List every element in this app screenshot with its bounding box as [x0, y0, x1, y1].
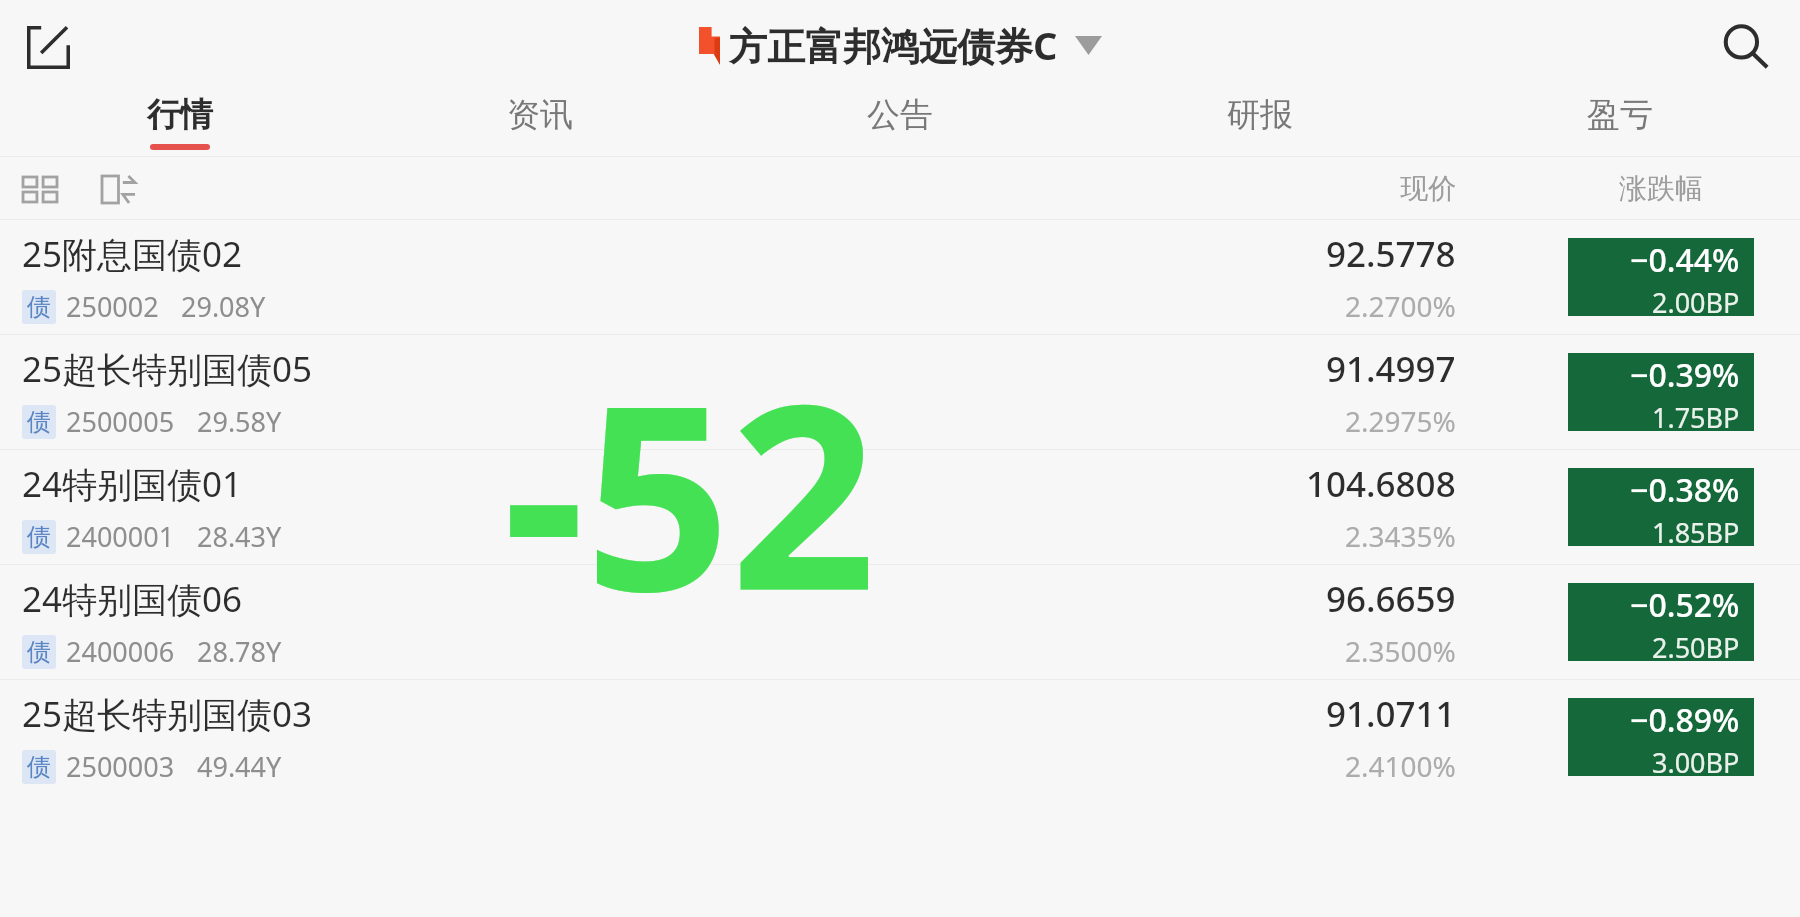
- staticText: −0.44%: [1630, 238, 1740, 282]
- staticText: 250002: [66, 288, 159, 325]
- button[interactable]: Edit: [18, 17, 78, 77]
- button[interactable]: 资讯: [360, 93, 720, 157]
- button[interactable]: 25附息国债02: [0, 220, 1800, 334]
- staticText: 1.75BP: [1652, 399, 1740, 431]
- staticText: 2.50BP: [1652, 629, 1740, 661]
- staticText: 研报: [1227, 94, 1293, 136]
- staticText: 29.58Y: [197, 403, 282, 440]
- staticText: 28.43Y: [197, 518, 282, 555]
- staticText: 债: [27, 407, 51, 437]
- staticText: 债: [27, 637, 51, 667]
- staticText: 91.0711: [1326, 690, 1456, 738]
- staticText: 2500005: [66, 403, 175, 440]
- staticText: −0.39%: [1630, 353, 1740, 397]
- staticText: 1.85BP: [1652, 514, 1740, 546]
- staticText: 方正富邦鸿远债券C: [729, 19, 1058, 71]
- staticText: 28.78Y: [197, 633, 282, 670]
- button[interactable]: Search: [1714, 15, 1778, 79]
- staticText: 25超长特别国债05: [22, 345, 313, 393]
- staticText: 2.4100%: [1345, 747, 1456, 785]
- button[interactable]: 24特别国债01: [0, 450, 1800, 564]
- button[interactable]: Grid layout: [14, 163, 66, 215]
- staticText: 2.2975%: [1345, 402, 1456, 440]
- staticText: 公告: [867, 94, 933, 136]
- button[interactable]: 24特别国债06: [0, 565, 1800, 679]
- staticText: 2.2700%: [1345, 287, 1456, 325]
- staticText: −0.89%: [1630, 698, 1740, 742]
- staticText: 91.4997: [1326, 345, 1456, 393]
- staticText: 24特别国债06: [22, 575, 243, 623]
- staticText: 行情: [147, 94, 213, 136]
- staticText: 2400001: [66, 518, 175, 555]
- button[interactable]: 公告: [720, 93, 1080, 157]
- staticText: 49.44Y: [197, 748, 282, 785]
- staticText: 104.6808: [1306, 460, 1456, 508]
- button[interactable]: 25超长特别国债05: [0, 335, 1800, 449]
- staticText: 3.00BP: [1652, 744, 1740, 776]
- staticText: 2.3500%: [1345, 632, 1456, 670]
- staticText: 2.3435%: [1345, 517, 1456, 555]
- staticText: −0.52%: [1630, 583, 1740, 627]
- staticText: 24特别国债01: [22, 460, 243, 508]
- button[interactable]: 研报: [1080, 93, 1440, 157]
- staticText: 现价: [1400, 171, 1456, 206]
- staticText: 涨跌幅: [1619, 171, 1703, 206]
- staticText: 2500003: [66, 748, 175, 785]
- staticText: 资讯: [507, 94, 573, 136]
- staticText: 盈亏: [1587, 94, 1653, 136]
- staticText: 2400006: [66, 633, 175, 670]
- staticText: 29.08Y: [181, 288, 266, 325]
- button[interactable]: 行情: [0, 93, 360, 157]
- staticText: 债: [27, 522, 51, 552]
- staticText: −0.38%: [1630, 468, 1740, 512]
- staticText: 25超长特别国债03: [22, 690, 313, 738]
- staticText: 96.6659: [1326, 575, 1456, 623]
- staticText: 债: [27, 752, 51, 782]
- staticText: 2.00BP: [1652, 284, 1740, 316]
- staticText: 债: [27, 292, 51, 322]
- staticText: 92.5778: [1326, 230, 1456, 278]
- button[interactable]: 25超长特别国债03: [0, 680, 1800, 794]
- staticText: 25附息国债02: [22, 230, 243, 278]
- staticText: -52: [503, 317, 877, 664]
- button[interactable]: 盈亏: [1440, 93, 1800, 157]
- button[interactable]: Sort columns: [92, 163, 144, 215]
- button[interactable]: 方正富邦鸿远债券C: [699, 19, 1102, 71]
